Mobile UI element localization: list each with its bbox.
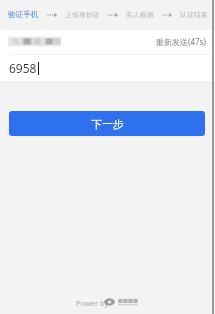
staticText: 下一步 (91, 117, 124, 131)
staticText: Power by (76, 298, 109, 308)
staticText: 6958 (9, 60, 37, 76)
button[interactable]: 重新发送(47s) (156, 36, 206, 47)
button[interactable]: 验证手机 (8, 10, 39, 20)
button[interactable]: 下一步 (9, 111, 205, 136)
button[interactable]: 认证结果 (180, 10, 208, 19)
button[interactable]: 实人检测 (126, 10, 154, 19)
button[interactable]: 上传身份证 (65, 10, 100, 19)
other: Brand logo (104, 298, 115, 306)
